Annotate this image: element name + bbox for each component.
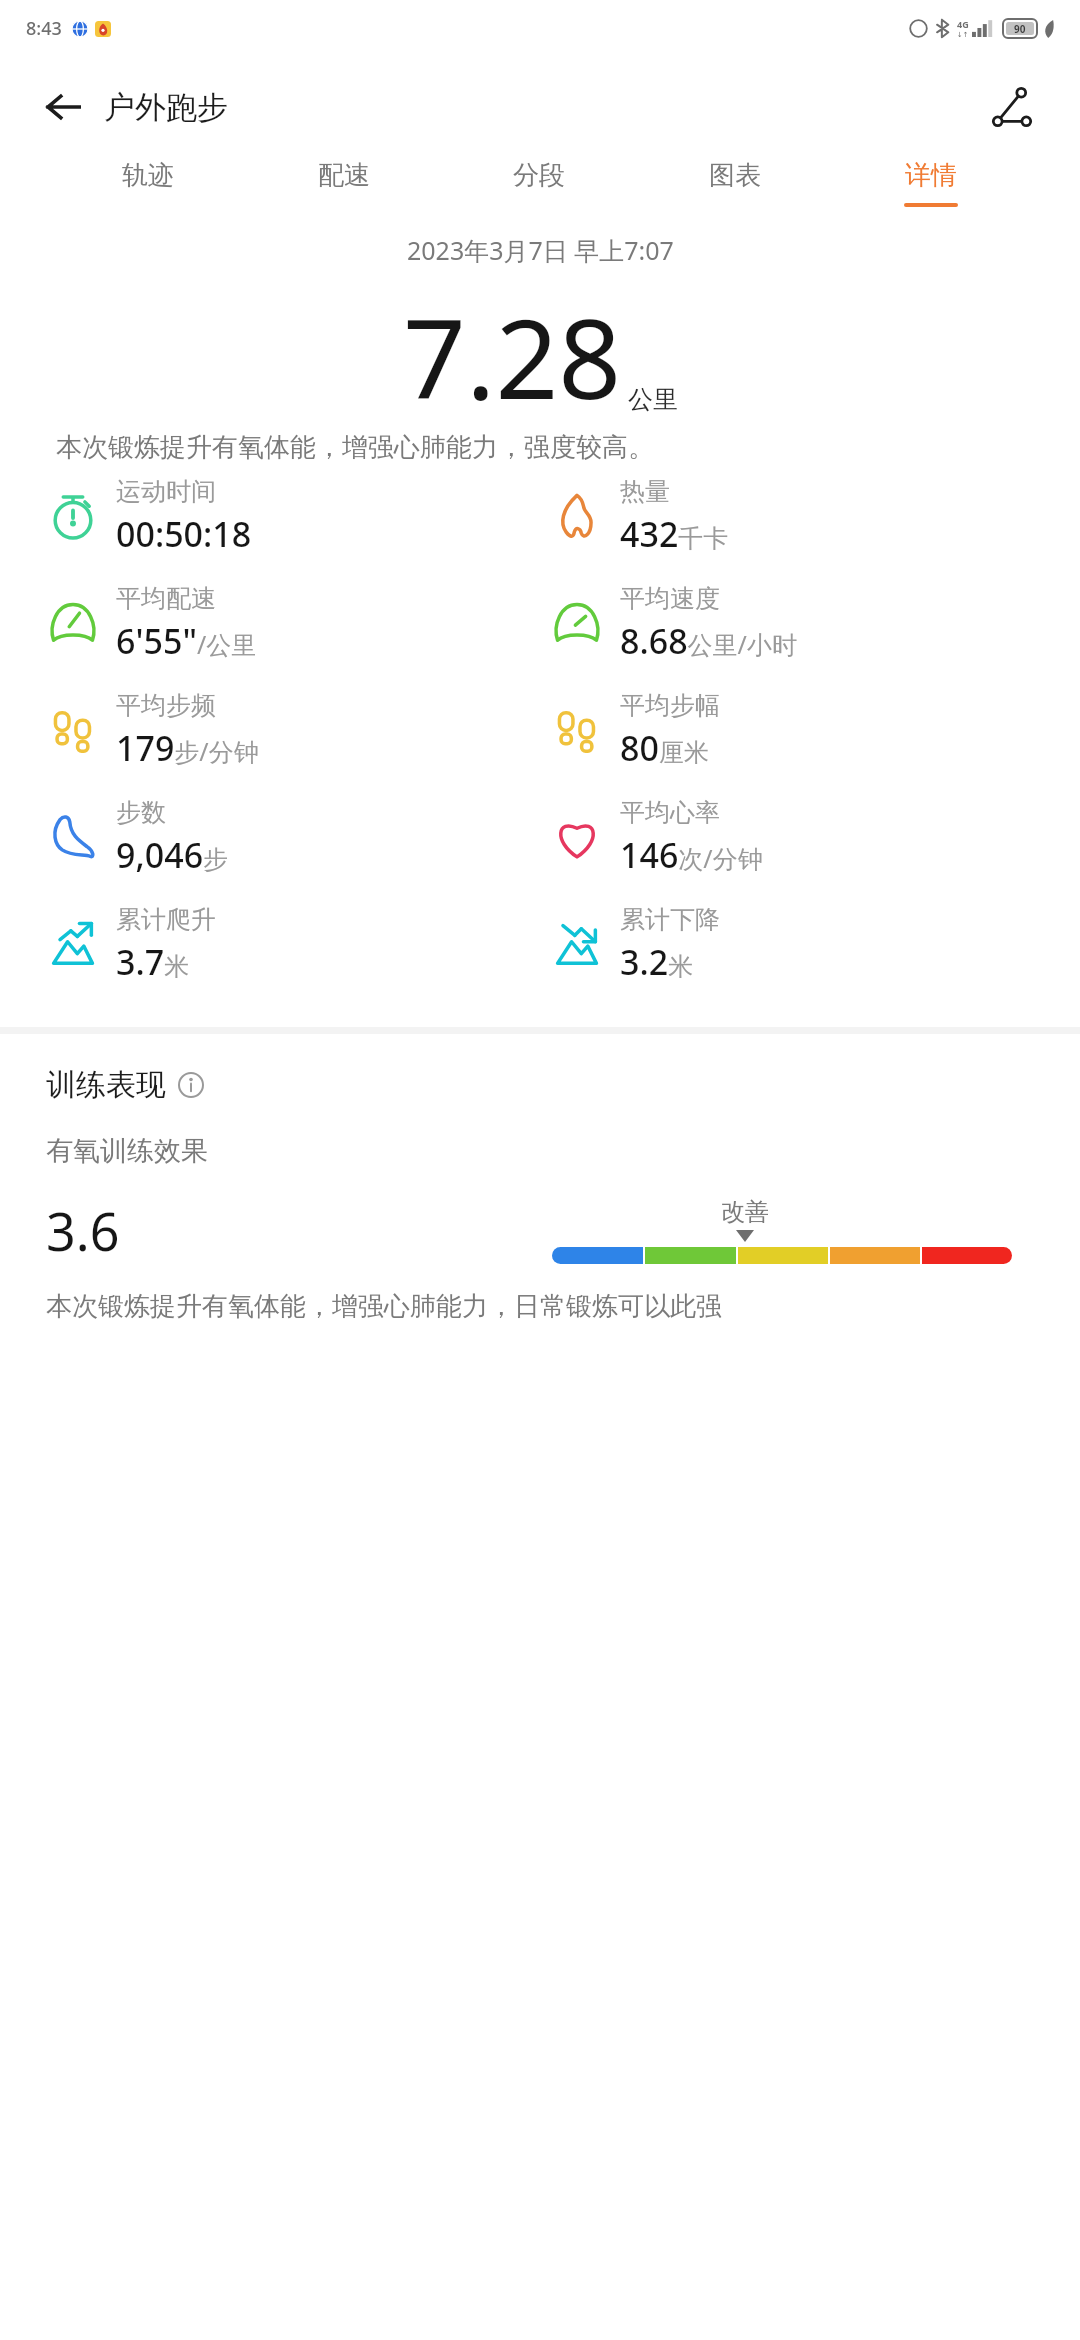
staticText: 改善 [721,1197,769,1227]
staticText: 179步/分钟 [116,725,259,771]
staticText: 图表 [709,159,761,192]
staticText: 本次锻炼提升有氧体能，增强心肺能力，日常锻炼可以此强 [46,1290,722,1323]
staticText: 累计下降 [620,904,720,935]
button[interactable]: 训练表现 [46,1066,204,1104]
button[interactable]: 累计下降 [550,904,1080,985]
staticText: 累计爬升 [116,904,216,935]
staticText: 8:43 [26,16,62,41]
staticText: 运动时间 [116,476,216,507]
staticText: 平均速度 [620,583,720,614]
button[interactable]: 热量 [550,476,1080,557]
button[interactable]: 平均配速 [46,583,540,664]
staticText: 3.6 [46,1195,120,1266]
button[interactable]: 户外跑步 [104,88,228,127]
staticText: 步数 [116,797,166,828]
staticText: 分段 [513,159,565,192]
staticText: 80厘米 [620,725,709,771]
staticText: 配速 [318,159,370,192]
button[interactable]: Share [984,79,1040,135]
button[interactable]: 分段 [509,157,569,209]
staticText: 轨迹 [122,159,174,192]
staticText: 4G [957,18,969,30]
button[interactable]: 累计爬升 [46,904,540,985]
staticText: 本次锻炼提升有氧体能，增强心肺能力，强度较高。 [56,431,1032,464]
staticText: 432千卡 [620,511,729,557]
button[interactable]: 平均步幅 [550,690,1080,771]
button[interactable]: 平均速度 [550,583,1080,664]
staticText: 6'55"/公里 [116,618,257,664]
button[interactable]: Back [40,83,88,131]
other: Info [178,1072,204,1098]
staticText: 90 [1014,22,1026,36]
staticText: 有氧训练效果 [46,1134,208,1168]
staticText: ↓↑ [957,31,969,39]
staticText: 详情 [905,159,957,192]
button[interactable]: 详情 [900,157,962,209]
staticText: 平均步频 [116,690,216,721]
staticText: 公里 [628,384,678,415]
staticText: 训练表现 [46,1066,166,1104]
button[interactable]: 平均步频 [46,690,540,771]
button[interactable]: 配速 [314,157,374,209]
staticText: 平均步幅 [620,690,720,721]
button[interactable]: 运动时间 [46,476,540,557]
staticText: 146次/分钟 [620,832,763,878]
staticText: 3.7米 [116,939,190,985]
button[interactable]: 步数 [46,797,540,878]
staticText: 热量 [620,476,670,507]
staticText: 00:50:18 [116,511,252,557]
button[interactable]: 平均心率 [550,797,1080,878]
staticText: 2023年3月7日 早上7:07 [407,233,674,267]
staticText: 平均配速 [116,583,216,614]
button[interactable]: 轨迹 [118,157,178,209]
staticText: 9,046步 [116,832,229,878]
staticText: 平均心率 [620,797,720,828]
staticText: 7.28 [403,281,622,431]
staticText: 8.68公里/小时 [620,618,797,664]
staticText: 3.2米 [620,939,694,985]
button[interactable]: 图表 [705,157,765,209]
